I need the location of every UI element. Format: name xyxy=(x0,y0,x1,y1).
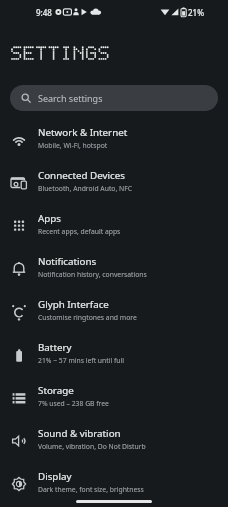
button[interactable]: Battery xyxy=(0,333,228,376)
button[interactable]: Sound & vibration xyxy=(0,419,228,462)
staticText: Mobile, Wi-Fi, hotspot xyxy=(38,141,108,150)
button[interactable]: Search settings xyxy=(10,85,218,111)
button[interactable]: Notifications xyxy=(0,247,228,290)
staticText: Customise ringtones and more xyxy=(38,313,137,322)
staticText: Network & Internet xyxy=(38,126,128,139)
staticText: Storage xyxy=(38,384,74,397)
staticText: Volume, vibration, Do Not Disturb xyxy=(38,442,146,451)
staticText: Dark theme, font size, brightness xyxy=(38,485,144,494)
staticText: 21% xyxy=(188,7,204,18)
staticText: Display xyxy=(38,470,72,483)
staticText: Bluetooth, Android Auto, NFC xyxy=(38,184,133,193)
staticText: 9:48 xyxy=(36,7,52,18)
staticText: Battery xyxy=(38,341,72,354)
button[interactable]: Apps xyxy=(0,204,228,247)
button[interactable]: Storage xyxy=(0,376,228,419)
staticText: Notification history, conversations xyxy=(38,270,147,279)
button[interactable]: Network & Internet xyxy=(0,118,228,161)
staticText: Apps xyxy=(38,212,62,225)
staticText: Connected Devices xyxy=(38,169,125,182)
staticText: 7% used – 238 GB free xyxy=(38,399,109,408)
staticText: Notifications xyxy=(38,255,97,268)
staticText: Sound & vibration xyxy=(38,427,121,440)
staticText: Glyph Interface xyxy=(38,298,109,311)
staticText: Recent apps, default apps xyxy=(38,227,121,236)
button[interactable]: Display xyxy=(0,462,228,505)
button[interactable]: Connected Devices xyxy=(0,161,228,204)
staticText: 21% ~ 57 mins left until full xyxy=(38,356,125,365)
staticText: Search settings xyxy=(38,92,103,104)
button[interactable]: Glyph Interface xyxy=(0,290,228,333)
